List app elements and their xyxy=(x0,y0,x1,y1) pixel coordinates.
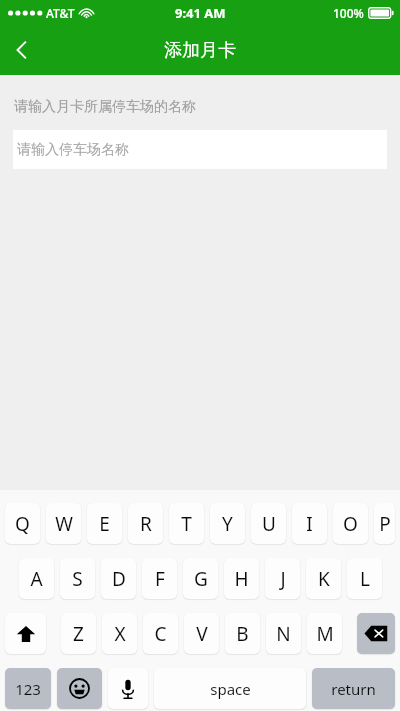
button[interactable]: T xyxy=(169,503,204,544)
button[interactable]: V xyxy=(184,613,219,654)
staticText: U xyxy=(262,511,276,537)
staticText: G xyxy=(194,566,208,592)
button[interactable]: O xyxy=(333,503,368,544)
staticText: X xyxy=(114,621,126,647)
staticText: B xyxy=(236,621,249,647)
staticText: 请输入停车场名称 xyxy=(17,141,129,159)
staticText: Z xyxy=(73,621,84,647)
button[interactable]: W xyxy=(46,503,81,544)
staticText: F xyxy=(155,566,165,592)
button[interactable]: I xyxy=(292,503,327,544)
staticText: C xyxy=(154,621,167,647)
staticText: W xyxy=(55,511,73,537)
button[interactable]: B xyxy=(225,613,260,654)
button[interactable]: N xyxy=(266,613,301,654)
staticText: A xyxy=(30,566,43,592)
staticText: P xyxy=(379,511,391,537)
button[interactable]: Emoji xyxy=(57,668,102,709)
staticText: D xyxy=(112,566,126,592)
staticText: T xyxy=(181,511,192,537)
staticText: I xyxy=(306,511,313,537)
staticText: K xyxy=(318,566,330,592)
staticText: O xyxy=(343,511,358,537)
button[interactable]: Q xyxy=(5,503,40,544)
button[interactable]: Dictate xyxy=(108,668,148,709)
button[interactable]: Y xyxy=(210,503,245,544)
button[interactable]: K xyxy=(306,558,341,599)
button[interactable]: 123 xyxy=(5,668,51,709)
staticText: S xyxy=(72,566,83,592)
staticText: return xyxy=(331,679,376,699)
staticText: 请输入月卡所属停车场的名称 xyxy=(14,98,196,116)
staticText: N xyxy=(276,621,291,647)
staticText: 添加月卡 xyxy=(164,39,236,62)
staticText: M xyxy=(316,621,334,647)
button[interactable]: 请输入停车场名称 xyxy=(13,130,387,169)
button[interactable]: A xyxy=(19,558,54,599)
staticText: 9:41 AM xyxy=(175,4,226,22)
staticText: space xyxy=(210,679,251,699)
button[interactable]: Backspace xyxy=(357,613,395,654)
button[interactable]: P xyxy=(374,503,395,544)
staticText: E xyxy=(99,511,110,537)
staticText: 100% xyxy=(333,5,364,21)
button[interactable]: Z xyxy=(61,613,96,654)
staticText: AT&T xyxy=(46,5,75,21)
staticText: V xyxy=(196,621,208,647)
staticText: Y xyxy=(222,511,233,537)
button[interactable]: Back xyxy=(0,28,44,72)
button[interactable]: return xyxy=(312,668,395,709)
button[interactable]: R xyxy=(128,503,163,544)
staticText: R xyxy=(140,511,152,537)
staticText: H xyxy=(234,566,249,592)
staticText: Q xyxy=(15,511,30,537)
button[interactable]: C xyxy=(143,613,178,654)
button[interactable]: S xyxy=(60,558,95,599)
button[interactable]: U xyxy=(251,503,286,544)
button[interactable]: X xyxy=(102,613,137,654)
staticText: L xyxy=(360,566,370,592)
staticText: J xyxy=(280,566,286,592)
button[interactable]: L xyxy=(347,558,382,599)
button[interactable]: D xyxy=(101,558,136,599)
button[interactable]: J xyxy=(265,558,300,599)
button[interactable]: H xyxy=(224,558,259,599)
button[interactable]: G xyxy=(183,558,218,599)
button[interactable]: F xyxy=(142,558,177,599)
button[interactable]: Shift xyxy=(5,613,46,654)
button[interactable]: E xyxy=(87,503,122,544)
staticText: 123 xyxy=(15,679,41,699)
button[interactable]: space xyxy=(154,668,306,709)
button[interactable]: M xyxy=(307,613,342,654)
